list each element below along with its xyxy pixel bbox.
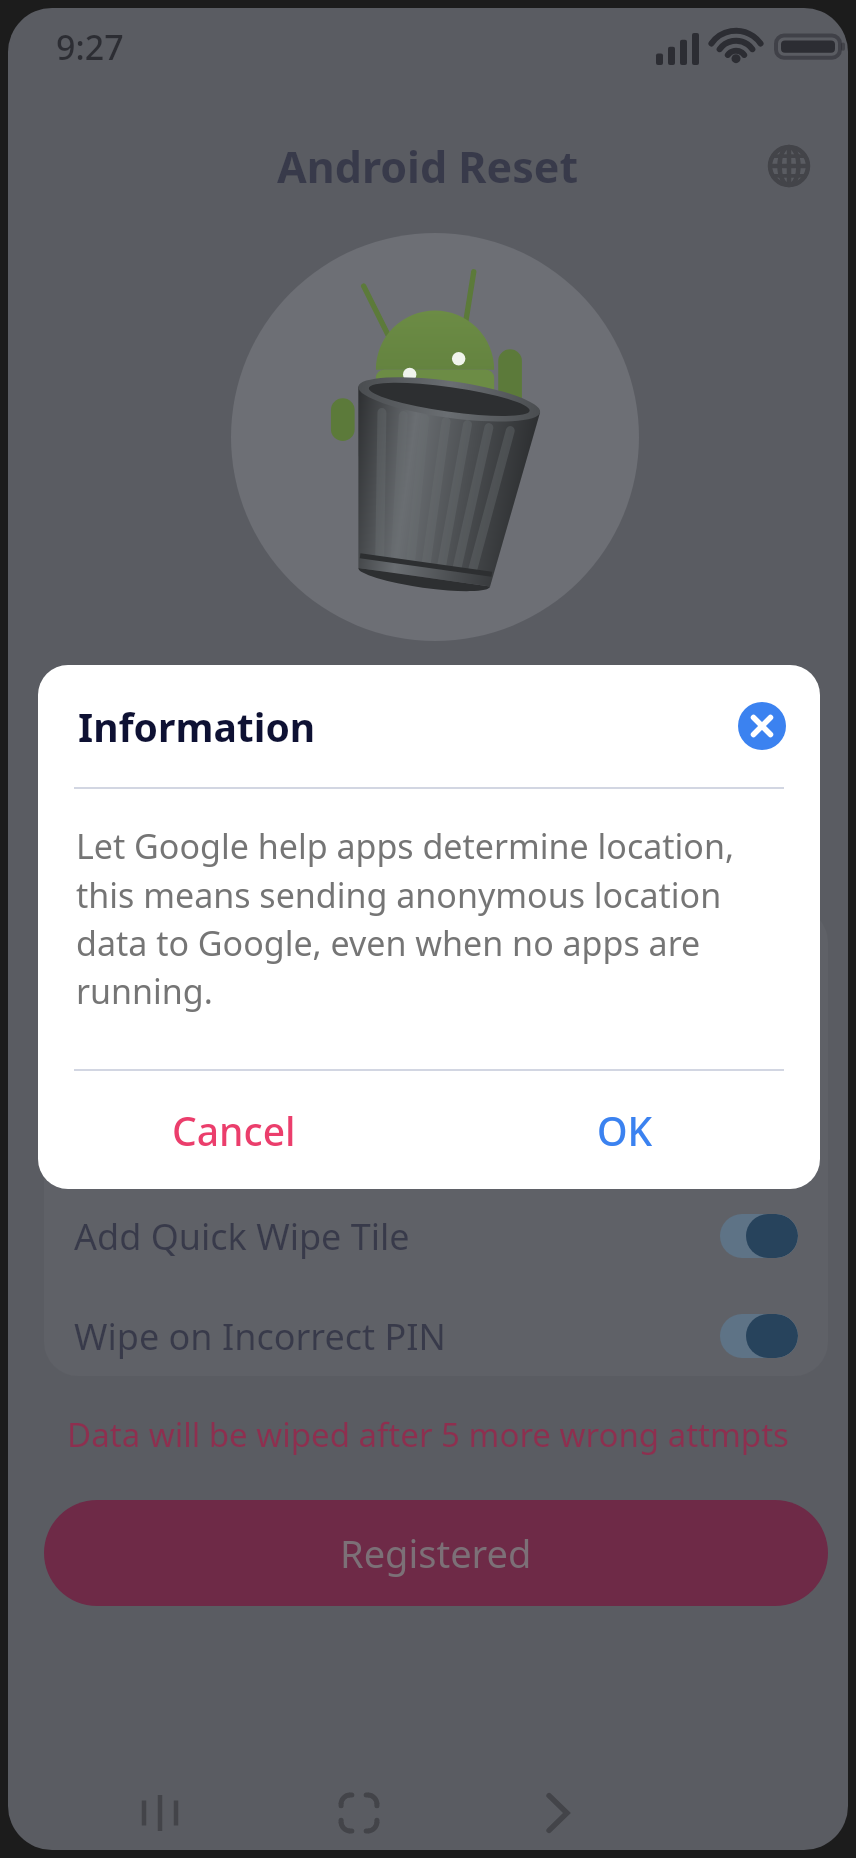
staticText: Add Quick Wipe Tile xyxy=(74,1212,720,1261)
staticText: 9:27 xyxy=(56,24,124,70)
staticText: Registered xyxy=(340,1527,532,1579)
button[interactable]: Back xyxy=(516,1771,600,1850)
button[interactable]: Home xyxy=(317,1771,401,1850)
button[interactable]: Close xyxy=(738,702,786,750)
staticText: Let Google help apps determine location,… xyxy=(76,823,778,1014)
button[interactable]: Wipe on Incorrect PIN xyxy=(44,1280,828,1376)
button[interactable]: Add Quick Wipe Tile xyxy=(44,1180,828,1292)
staticText: OK xyxy=(597,1104,653,1157)
staticText: Information xyxy=(78,700,316,753)
button[interactable]: Registered xyxy=(44,1500,828,1606)
button[interactable]: Cancel xyxy=(38,1071,429,1189)
staticText: Wipe on Incorrect PIN xyxy=(74,1312,720,1361)
staticText: Android Reset xyxy=(277,137,579,196)
staticText: Cancel xyxy=(172,1104,296,1157)
button[interactable]: Recents xyxy=(118,1771,202,1850)
button[interactable]: OK xyxy=(429,1071,820,1189)
button[interactable]: Language xyxy=(760,137,818,195)
staticText: Data will be wiped after 5 more wrong at… xyxy=(8,1412,848,1457)
